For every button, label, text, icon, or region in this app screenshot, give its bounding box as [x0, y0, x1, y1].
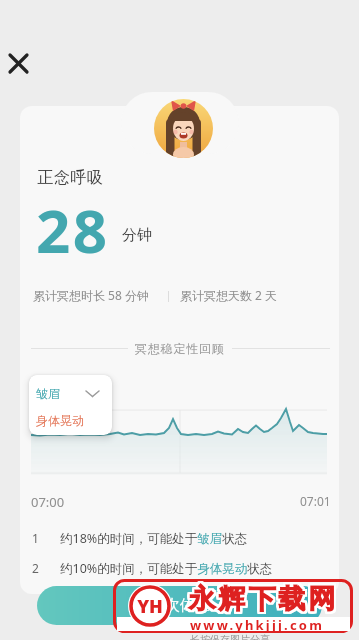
staticText: 身体晃动: [36, 413, 84, 428]
staticText: 永辉下载网: [188, 584, 338, 618]
staticText: 永辉下载网: [185, 584, 335, 618]
staticText: 永辉下载网: [187, 584, 337, 618]
staticText: 永辉下载网: [189, 580, 339, 614]
staticText: 累计冥想时长 58 分钟: [33, 287, 149, 303]
staticText: 正念呼吸: [37, 168, 103, 188]
staticText: 再次体验: [150, 596, 210, 615]
staticText: 分钟: [122, 226, 152, 245]
staticText: 皱眉: [36, 386, 60, 401]
staticText: 约10%的时间，可能处于身体晃动状态: [60, 560, 273, 577]
button[interactable]: 再次体验: [37, 586, 322, 625]
staticText: 28: [36, 189, 110, 271]
staticText: 永辉下载网: [185, 580, 335, 614]
staticText: YH: [137, 594, 163, 619]
staticText: 永辉下载网: [185, 581, 335, 615]
staticText: 永辉下载网: [189, 584, 339, 618]
staticText: 永辉下载网: [187, 582, 337, 616]
button[interactable]: 皱眉: [29, 375, 112, 435]
staticText: 永辉下载网: [188, 582, 338, 616]
staticText: 2: [32, 560, 39, 576]
staticText: 1: [32, 530, 39, 546]
staticText: 永辉下载网: [189, 583, 339, 617]
staticText: 约18%的时间，可能处于皱眉状态: [60, 530, 248, 547]
staticText: 永辉下载网: [185, 582, 335, 616]
staticText: 永辉下载网: [186, 581, 336, 615]
staticText: 永辉下载网: [189, 581, 339, 615]
button[interactable]: [4, 49, 34, 79]
staticText: 永辉下载网: [187, 580, 337, 614]
staticText: 07:00: [31, 493, 65, 511]
staticText: 永辉下载网: [185, 583, 335, 617]
staticText: 永辉下载网: [186, 580, 336, 614]
staticText: 长按保存图片分享: [190, 633, 270, 640]
staticText: 07:01: [300, 493, 331, 509]
staticText: 永辉下载网: [186, 582, 336, 616]
staticText: 永辉下载网: [189, 582, 339, 616]
staticText: 永辉下载网: [187, 583, 337, 617]
staticText: 永辉下载网: [187, 581, 337, 615]
staticText: 永辉下载网: [188, 583, 338, 617]
staticText: 永辉下载网: [188, 580, 338, 614]
staticText: 永辉下载网: [186, 584, 336, 618]
staticText: 累计冥想天数 2 天: [180, 287, 278, 303]
staticText: 永辉下载网: [186, 583, 336, 617]
staticText: 冥想稳定性回顾: [135, 341, 225, 356]
staticText: www.yhkjjj.com: [190, 616, 325, 634]
staticText: 永辉下载网: [188, 581, 338, 615]
